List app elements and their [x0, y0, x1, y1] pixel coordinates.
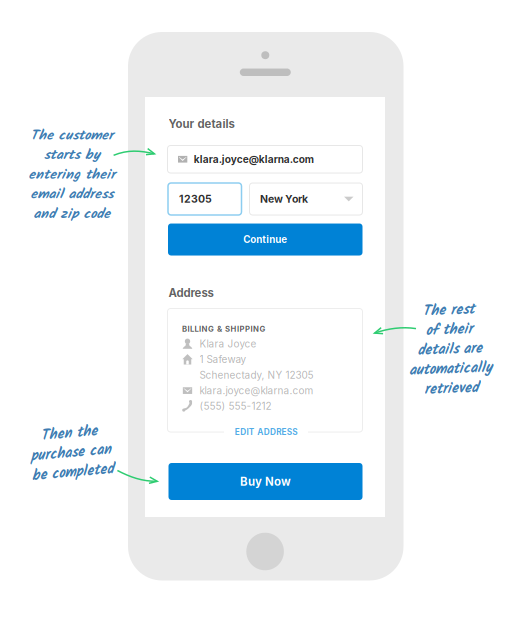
staticText: and zip code — [33, 203, 110, 225]
staticText: klara.joyce@klarna.com — [194, 153, 314, 165]
staticText: entering their — [28, 164, 115, 186]
staticText: email address — [30, 183, 113, 206]
staticText: The customer — [30, 125, 113, 147]
button[interactable]: EDIT ADDRESS — [224, 425, 308, 438]
staticText: purchase can — [30, 442, 111, 464]
staticText: retrieved — [423, 378, 477, 400]
staticText: BILLING & SHIPPING — [182, 324, 265, 334]
staticText: starts by — [44, 144, 100, 166]
staticText: automatically — [408, 358, 491, 381]
staticText: EDIT ADDRESS — [235, 427, 297, 437]
button[interactable]: 12305 — [168, 183, 241, 215]
staticText: (555) 555-1212 — [199, 400, 271, 412]
staticText: klara.joyce@klarna.com — [199, 385, 313, 397]
staticText: be completed — [30, 462, 112, 484]
button[interactable]: Buy Now — [168, 463, 362, 500]
staticText: The rest — [424, 300, 476, 322]
staticText: Your details — [168, 117, 234, 131]
staticText: Address — [168, 286, 213, 300]
staticText: 12305 — [179, 193, 212, 205]
staticText: details are — [417, 339, 482, 361]
staticText: New York — [260, 193, 308, 205]
staticText: 1 Safeway — [199, 353, 246, 365]
staticText: Schenectady, NY 12305 — [199, 369, 313, 381]
staticText: Buy Now — [240, 475, 291, 488]
staticText: Continue — [243, 234, 287, 245]
staticText: Then the — [42, 423, 99, 445]
button[interactable]: New York — [249, 183, 362, 215]
staticText: Klara Joyce — [199, 338, 256, 350]
staticText: of their — [426, 319, 473, 341]
button[interactable]: klara.joyce@klarna.com — [167, 145, 362, 173]
button[interactable]: Continue — [168, 223, 362, 255]
